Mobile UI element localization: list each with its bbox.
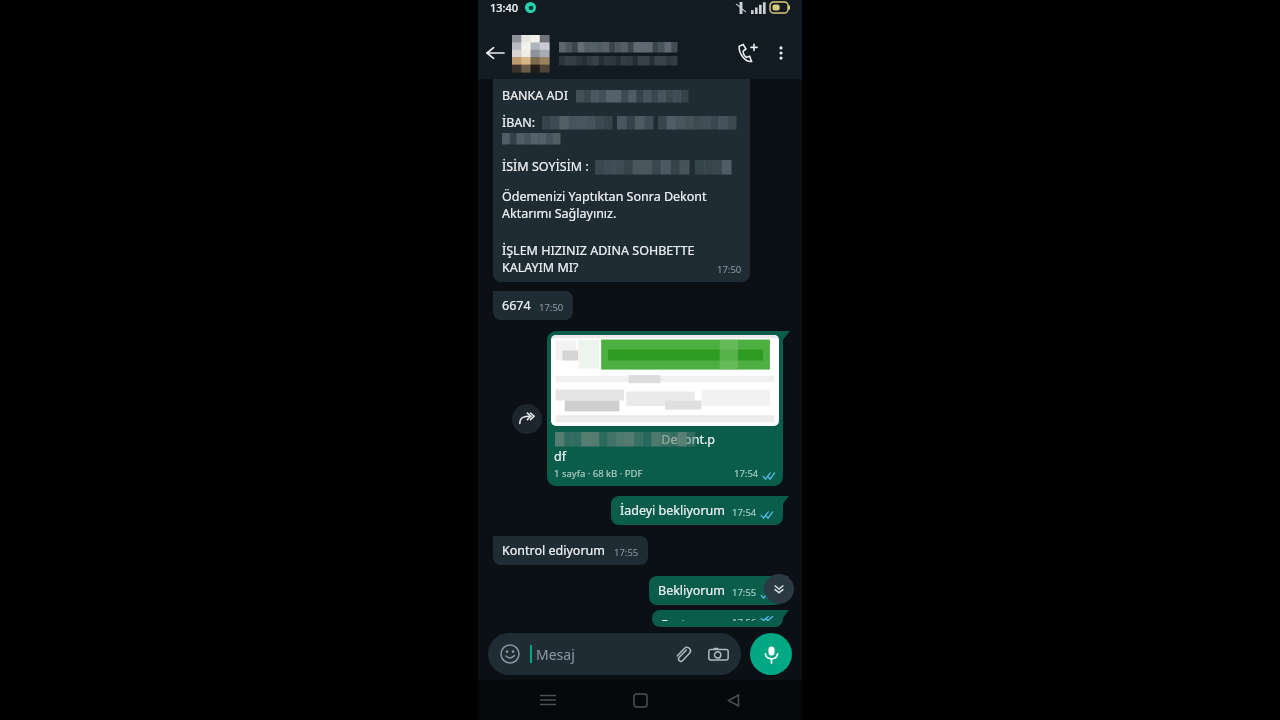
button[interactable]: Add call	[730, 35, 766, 71]
button[interactable]: Home	[617, 680, 663, 720]
staticText: 17:54	[734, 467, 759, 480]
button[interactable]: Profile photo	[512, 35, 549, 72]
staticText: 1 sayfa · 68 kB · PDF	[554, 467, 643, 480]
button[interactable]: Emoji	[499, 643, 521, 665]
staticText: Dekont.p	[554, 431, 715, 448]
staticText: 13:40	[490, 0, 519, 15]
staticText: Bekliyorum	[658, 582, 725, 599]
button[interactable]: Dekont.p	[547, 331, 783, 486]
staticText: İadeyi bekliyorum	[620, 502, 725, 519]
button[interactable]: Bekliyorum	[649, 576, 783, 605]
button[interactable]: BANKA ADI	[493, 79, 750, 282]
button[interactable]: Scroll to bottom	[764, 574, 794, 604]
button[interactable]: Forward	[512, 404, 542, 434]
staticText: Ödemenizi Yaptıktan Sonra Dekont	[502, 188, 707, 205]
staticText: 17:50	[717, 263, 742, 276]
staticText: 17:55	[614, 546, 639, 559]
button[interactable]: Emoji	[488, 633, 741, 675]
staticText: İSİM SOYİSİM :	[502, 158, 589, 175]
staticText: df	[554, 448, 566, 465]
staticText: İŞLEM HIZINIZ ADINA SOHBETTE	[502, 242, 695, 259]
button[interactable]: Recent apps	[525, 680, 571, 720]
button[interactable]: Camera	[706, 642, 730, 666]
staticText: Kontrol ediyorum	[502, 542, 605, 559]
button[interactable]: More options	[766, 38, 796, 68]
staticText: KALAYIM MI?	[502, 259, 579, 276]
staticText: 17:56	[732, 616, 757, 621]
staticText: 17:50	[539, 301, 564, 314]
button[interactable]: Kontrol ediyorum	[493, 536, 648, 565]
staticText: İBAN:	[502, 114, 536, 131]
staticText: 17:54	[732, 506, 757, 519]
staticText: Aktarımı Sağlayınız.	[502, 205, 617, 222]
button[interactable]: Attach	[670, 642, 694, 666]
button[interactable]: Back	[710, 680, 756, 720]
button[interactable]: Evet sonuç	[652, 610, 783, 627]
staticText: Evet sonuç	[661, 616, 725, 621]
staticText: 6674	[502, 297, 531, 314]
button[interactable]: Voice message	[750, 633, 792, 675]
button[interactable]: Back	[478, 36, 512, 70]
staticText: BANKA ADI	[502, 87, 568, 104]
button[interactable]: İadeyi bekliyorum	[611, 496, 783, 525]
staticText: 17:55	[732, 586, 757, 599]
button[interactable]: 6674	[493, 291, 573, 320]
staticText: Mesaj	[536, 645, 575, 664]
button[interactable]	[559, 42, 724, 65]
